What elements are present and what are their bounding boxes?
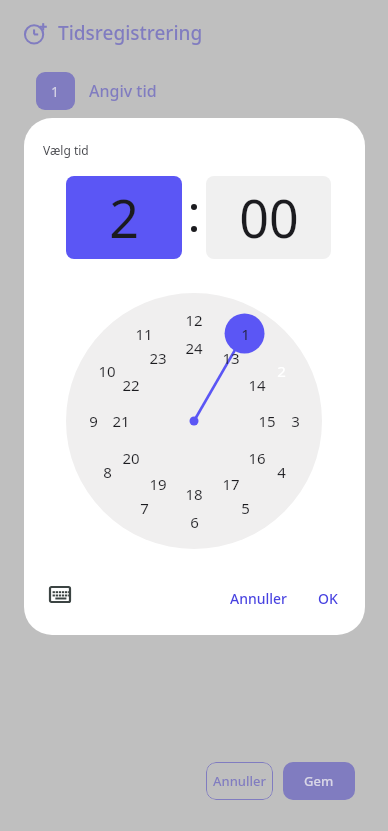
staticText: 24 <box>185 338 203 358</box>
staticText: 00 <box>239 182 299 253</box>
button[interactable]: Vælg time <box>66 293 322 549</box>
staticText: 16 <box>248 448 266 468</box>
button[interactable]: 18 <box>177 477 211 511</box>
button[interactable]: Skift til indtastning med tastatur <box>36 570 84 618</box>
button[interactable]: 22 <box>114 368 148 402</box>
button[interactable]: 9 <box>76 404 110 438</box>
staticText: 14 <box>248 375 266 395</box>
staticText: Annuller <box>213 772 266 790</box>
button[interactable]: 20 <box>114 441 148 475</box>
staticText: Annuller <box>230 589 288 608</box>
staticText: 18 <box>185 484 203 504</box>
button[interactable]: 14 <box>240 368 274 402</box>
button[interactable]: 15 <box>250 404 284 438</box>
button[interactable]: 21 <box>104 404 138 438</box>
button[interactable]: Gem <box>283 762 355 800</box>
staticText: Gem <box>304 772 334 790</box>
staticText: 6 <box>190 512 199 532</box>
button[interactable]: 11 <box>127 317 161 351</box>
staticText: 3 <box>291 411 300 431</box>
staticText: 20 <box>122 448 140 468</box>
staticText: 1 <box>51 82 60 101</box>
button[interactable]: 2 <box>264 354 298 388</box>
staticText: 19 <box>149 474 167 494</box>
staticText: 17 <box>222 474 240 494</box>
button[interactable]: 00 <box>206 176 331 259</box>
button[interactable]: 23 <box>141 341 175 375</box>
button[interactable]: 4 <box>264 455 298 489</box>
button[interactable]: 7 <box>127 491 161 525</box>
staticText: 22 <box>122 375 140 395</box>
button[interactable]: 24 <box>177 331 211 365</box>
button[interactable]: Annuller <box>220 581 298 616</box>
staticText: Vælg tid <box>43 142 89 158</box>
button[interactable]: OK <box>308 581 348 616</box>
button[interactable]: 3 <box>278 404 312 438</box>
staticText: 2 <box>109 182 139 253</box>
staticText: 15 <box>258 411 276 431</box>
staticText: 10 <box>98 361 116 381</box>
staticText: 2 <box>277 361 286 381</box>
staticText: 4 <box>277 462 286 482</box>
button[interactable]: 19 <box>141 467 175 501</box>
button[interactable]: 12 <box>177 303 211 337</box>
button[interactable]: Annuller <box>206 762 273 800</box>
staticText: OK <box>318 589 338 608</box>
staticText: 12 <box>185 310 203 330</box>
button[interactable]: 16 <box>240 441 274 475</box>
button[interactable]: 10 <box>90 354 124 388</box>
staticText: 9 <box>89 411 98 431</box>
button[interactable]: 8 <box>90 455 124 489</box>
staticText: 5 <box>241 498 250 518</box>
button[interactable]: 2 <box>66 176 182 259</box>
staticText: 13 <box>222 348 240 368</box>
staticText: Angiv tid <box>89 80 157 102</box>
button[interactable]: 17 <box>214 467 248 501</box>
button[interactable]: 5 <box>228 491 262 525</box>
staticText: 1 <box>241 324 250 344</box>
staticText: Tidsregistrering <box>58 20 203 46</box>
staticText: 7 <box>140 498 149 518</box>
button[interactable]: 6 <box>177 505 211 539</box>
staticText: 21 <box>112 411 130 431</box>
staticText: 8 <box>103 462 112 482</box>
button[interactable]: 1 <box>228 317 262 351</box>
staticText: 11 <box>135 324 153 344</box>
button[interactable]: 13 <box>214 341 248 375</box>
staticText: 23 <box>149 348 167 368</box>
